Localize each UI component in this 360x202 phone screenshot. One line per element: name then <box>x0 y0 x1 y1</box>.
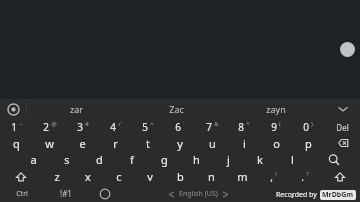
button[interactable]: o <box>260 135 292 151</box>
button[interactable]: v <box>134 168 165 185</box>
staticText: zar <box>70 103 83 115</box>
button[interactable]: Ctrl <box>0 185 44 202</box>
staticText: English (US) <box>179 189 218 199</box>
staticText: 5 <box>142 120 148 134</box>
button[interactable]: r <box>99 135 132 151</box>
staticText: Recorded by <box>276 190 317 200</box>
staticText: 6 <box>175 120 181 134</box>
button[interactable]: w <box>33 135 66 151</box>
staticText: Ctrl <box>16 189 28 199</box>
staticText: . <box>291 186 294 201</box>
staticText: ' <box>183 120 185 128</box>
staticText: @ <box>51 120 57 128</box>
button[interactable]: Shift right <box>320 168 360 185</box>
button[interactable]: b <box>165 168 196 185</box>
staticText: . <box>301 170 304 184</box>
button[interactable]: l <box>276 151 308 168</box>
button[interactable]: Del <box>324 119 360 135</box>
staticText: ( <box>279 120 281 128</box>
staticText: d <box>96 152 103 167</box>
staticText: y <box>177 136 183 151</box>
staticText: b <box>177 169 184 184</box>
button[interactable]: !#1 <box>44 185 87 202</box>
button[interactable]: k <box>244 151 276 168</box>
staticText: l <box>291 152 294 167</box>
staticText: ? <box>306 170 309 178</box>
button[interactable]: 0 <box>292 119 324 135</box>
staticText: s <box>64 152 70 167</box>
staticText: f <box>130 152 134 167</box>
button[interactable]: Backspace <box>324 135 360 151</box>
staticText: h <box>193 152 200 167</box>
staticText: a <box>30 152 37 167</box>
button[interactable]: e <box>66 135 99 151</box>
button[interactable]: 1 <box>0 119 33 135</box>
button[interactable]: zayn <box>226 99 326 119</box>
staticText: n <box>208 169 215 184</box>
button[interactable]: Expand suggestions <box>326 99 360 119</box>
button[interactable]: h <box>180 151 212 168</box>
button[interactable]: q <box>0 135 33 151</box>
staticText: 8 <box>238 120 244 134</box>
button[interactable]: Floating bubble <box>340 42 355 57</box>
button[interactable]: 9 <box>260 119 292 135</box>
staticText: z <box>54 169 60 184</box>
staticText: zayn <box>266 103 286 115</box>
button[interactable]: m <box>227 168 258 185</box>
staticText: , <box>270 170 273 184</box>
button[interactable]: g <box>148 151 180 168</box>
button[interactable]: n <box>196 168 227 185</box>
staticText: c <box>116 169 122 184</box>
button[interactable]: Toolbar <box>0 99 26 119</box>
staticText: 3 <box>77 120 83 134</box>
button[interactable]: Emoji <box>87 185 123 202</box>
button[interactable]: 2 <box>33 119 66 135</box>
button[interactable]: . <box>289 168 320 185</box>
staticText: !#1 <box>60 188 72 199</box>
staticText: # <box>85 120 89 128</box>
button[interactable]: 7 <box>196 119 228 135</box>
staticText: 4 <box>110 120 116 134</box>
button[interactable]: 6 <box>164 119 196 135</box>
button[interactable]: Shift <box>0 168 41 185</box>
staticText: ) <box>311 120 313 128</box>
button[interactable]: j <box>212 151 244 168</box>
staticText: t <box>146 136 150 151</box>
staticText: w <box>45 136 54 151</box>
button[interactable]: 5 <box>132 119 164 135</box>
staticText: * <box>246 120 250 128</box>
button[interactable]: Search <box>308 151 360 168</box>
staticText: p <box>305 136 312 151</box>
button[interactable]: u <box>196 135 228 151</box>
staticText: 9 <box>271 120 277 134</box>
staticText: q <box>13 136 20 151</box>
staticText: MrDbGm <box>322 190 354 200</box>
staticText: & <box>214 120 219 128</box>
button[interactable]: 4 <box>99 119 132 135</box>
button[interactable]: x <box>72 168 103 185</box>
button[interactable]: f <box>116 151 148 168</box>
button[interactable]: a <box>17 151 50 168</box>
button[interactable]: . <box>274 185 310 202</box>
button[interactable]: zar <box>27 99 126 119</box>
button[interactable]: Zac <box>126 99 226 119</box>
staticText: ! <box>275 170 277 178</box>
button[interactable]: y <box>164 135 196 151</box>
button[interactable]: t <box>132 135 164 151</box>
button[interactable]: p <box>292 135 324 151</box>
button[interactable]: 3 <box>66 119 99 135</box>
button[interactable]: s <box>50 151 83 168</box>
button[interactable]: 8 <box>228 119 260 135</box>
button[interactable]: d <box>83 151 116 168</box>
button[interactable]: English (US) <box>123 187 274 200</box>
button[interactable]: z <box>41 168 72 185</box>
staticText: g <box>161 152 168 167</box>
button[interactable]: c <box>103 168 134 185</box>
staticText: 2 <box>43 120 49 134</box>
button[interactable]: Enter <box>310 185 360 202</box>
staticText: 1 <box>11 120 17 134</box>
button[interactable]: i <box>228 135 260 151</box>
staticText: x <box>85 169 91 184</box>
staticText: ~ <box>19 120 23 128</box>
button[interactable]: , <box>258 168 289 185</box>
